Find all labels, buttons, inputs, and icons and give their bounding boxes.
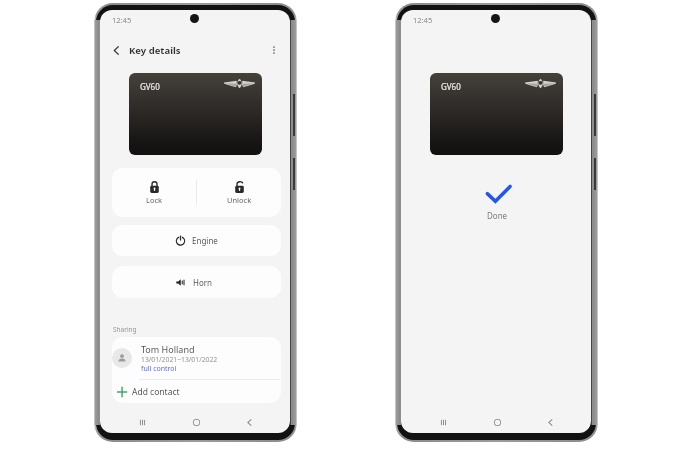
staticText: Unlock: [227, 195, 252, 205]
staticText: Done: [487, 210, 508, 221]
button[interactable]: Back: [107, 41, 125, 59]
staticText: Lock: [146, 195, 163, 205]
button[interactable]: Horn: [112, 266, 281, 298]
button[interactable]: Lock: [112, 168, 196, 217]
button[interactable]: Recents: [133, 413, 151, 431]
button[interactable]: Unlock: [197, 168, 281, 217]
staticText: Add contact: [132, 386, 180, 398]
button[interactable]: More options: [265, 41, 283, 59]
staticText: Engine: [192, 235, 218, 246]
button[interactable]: Home: [187, 413, 205, 431]
staticText: GV60: [441, 81, 461, 92]
button[interactable]: Engine: [112, 225, 281, 256]
staticText: 13/01/2021~13/01/2022: [141, 355, 218, 364]
button[interactable]: Back: [541, 413, 559, 431]
staticText: 12:45: [112, 15, 132, 25]
button[interactable]: Recents: [434, 413, 452, 431]
staticText: full control: [141, 364, 177, 374]
staticText: GV60: [140, 81, 160, 92]
button[interactable]: Home: [488, 413, 506, 431]
button[interactable]: Tom Holland: [112, 337, 281, 379]
staticText: Sharing: [113, 325, 137, 334]
staticText: Horn: [193, 277, 213, 288]
staticText: 12:45: [413, 15, 433, 25]
button[interactable]: Back: [240, 413, 258, 431]
staticText: Key details: [129, 44, 181, 57]
staticText: Tom Holland: [141, 343, 195, 355]
button[interactable]: Add contact: [112, 380, 281, 403]
